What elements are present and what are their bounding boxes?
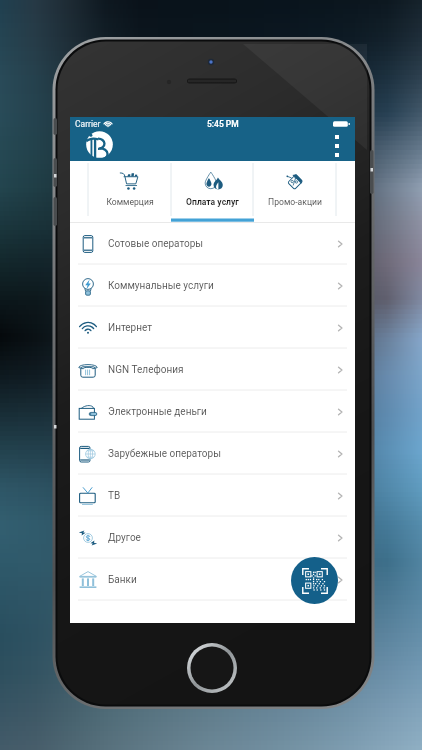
button[interactable]: More options [327,130,347,161]
button[interactable]: Logo [84,129,118,160]
staticText: Промо-акции [268,197,322,207]
button[interactable]: Сотовые операторы [70,223,355,264]
button[interactable]: ТВ [70,475,355,516]
button[interactable]: Интернет [70,307,355,348]
staticText: 5:45 PM [207,119,239,129]
staticText: Оплата услуг [186,197,239,207]
button[interactable]: Коммунальные услуги [70,265,355,306]
button[interactable]: Коммерция [88,161,171,223]
staticText: ТВ [108,490,121,502]
staticText: Коммунальные услуги [108,280,214,292]
staticText: Интернет [108,322,153,334]
button[interactable]: Банки [70,559,355,600]
staticText: Зарубежные операторы [108,448,221,460]
button[interactable]: Оплата услуг [171,161,254,223]
button[interactable]: Электронные деньги [70,391,355,432]
staticText: Сотовые операторы [108,238,204,250]
staticText: Carrier [75,119,101,129]
button[interactable]: NGN Телефония [70,349,355,390]
button[interactable]: Другое [70,517,355,558]
button[interactable]: Зарубежные операторы [70,433,355,474]
staticText: NGN Телефония [108,364,184,376]
staticText: Коммерция [106,197,154,207]
staticText: Другое [108,532,141,544]
button[interactable]: Промо-акции [253,161,336,223]
button[interactable]: Scan QR code [291,557,338,604]
staticText: Банки [108,574,137,586]
staticText: Электронные деньги [108,406,207,418]
